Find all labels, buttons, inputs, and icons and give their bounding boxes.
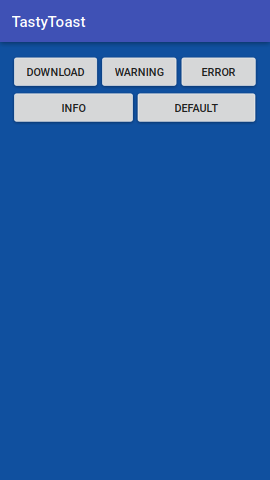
staticText: DOWNLOAD	[27, 66, 85, 79]
staticText: DEFAULT	[174, 102, 218, 115]
button[interactable]: DOWNLOAD	[14, 58, 97, 85]
button[interactable]: INFO	[14, 94, 132, 121]
staticText: WARNING	[115, 66, 164, 79]
staticText: TastyToast	[11, 13, 85, 31]
button[interactable]: DEFAULT	[138, 94, 255, 121]
staticText: INFO	[61, 102, 85, 115]
button[interactable]: WARNING	[102, 58, 176, 85]
staticText: ERROR	[202, 66, 236, 79]
button[interactable]: ERROR	[182, 58, 255, 85]
